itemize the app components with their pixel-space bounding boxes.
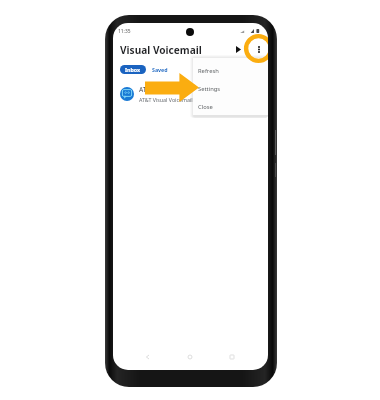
staticText: Visual Voicemail — [120, 43, 202, 57]
staticText: AT&T Visual Voicemail — [139, 85, 206, 94]
staticText: Saved — [152, 66, 168, 73]
button[interactable]: More options — [252, 42, 266, 56]
button[interactable]: Saved — [151, 65, 168, 74]
button[interactable]: Inbox — [120, 65, 146, 74]
button[interactable]: Close — [193, 97, 268, 116]
button[interactable]: Refresh — [193, 61, 268, 80]
button[interactable]: Home — [184, 351, 196, 363]
staticText: Refresh — [198, 67, 219, 75]
button[interactable]: AT&T Visual Voicemail — [113, 83, 268, 105]
staticText: Close — [198, 103, 213, 111]
staticText: Settings — [198, 85, 221, 93]
button[interactable]: Settings — [193, 79, 268, 98]
staticText: AT&T Visual Voicemail — [139, 96, 193, 103]
button[interactable]: Back — [141, 351, 153, 363]
button[interactable]: Recent apps — [226, 351, 238, 363]
staticText: 11:35 — [118, 28, 131, 35]
button[interactable]: Play all — [231, 42, 245, 56]
staticText: Inbox — [125, 66, 141, 73]
